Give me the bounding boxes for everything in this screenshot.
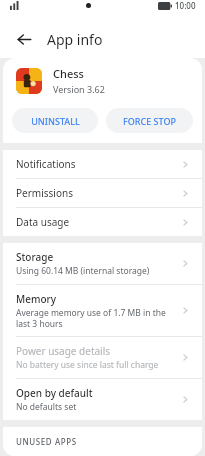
staticText: FORCE STOP: [123, 115, 176, 127]
staticText: Data usage: [16, 215, 180, 229]
button[interactable]: UNINSTALL: [12, 108, 98, 133]
staticText: Permissions: [16, 186, 180, 200]
staticText: UNINSTALL: [31, 115, 80, 127]
button[interactable]: Remove permissions and free up space: [3, 451, 202, 456]
staticText: App info: [47, 30, 103, 49]
staticText: Using 60.14 MB (internal storage): [16, 265, 150, 277]
button[interactable]: Notifications: [3, 150, 202, 178]
button[interactable]: Memory: [3, 285, 202, 336]
button[interactable]: FORCE STOP: [106, 108, 193, 133]
button[interactable]: Power usage details: [3, 337, 202, 378]
button[interactable]: Open by default: [3, 379, 202, 420]
staticText: Power usage details: [16, 344, 111, 358]
staticText: No battery use since last full charge: [16, 359, 159, 371]
button[interactable]: Data usage: [3, 208, 202, 236]
staticText: Chess: [53, 66, 84, 81]
staticText: Version 3.62: [53, 83, 105, 95]
staticText: Average memory use of 1.7 MB in the last…: [16, 307, 174, 329]
button[interactable]: Storage: [3, 243, 202, 284]
staticText: Open by default: [16, 386, 93, 400]
staticText: Storage: [16, 250, 54, 264]
button[interactable]: Back: [11, 26, 37, 52]
staticText: No defaults set: [16, 401, 77, 413]
staticText: 10:00: [175, 0, 196, 11]
staticText: Notifications: [16, 157, 180, 171]
button[interactable]: Permissions: [3, 179, 202, 207]
staticText: Memory: [16, 292, 57, 306]
staticText: UNUSED APPS: [16, 436, 77, 447]
